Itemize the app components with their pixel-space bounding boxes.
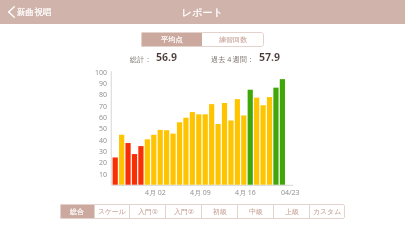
staticText: 57.9 xyxy=(259,50,281,64)
staticText: 4月 09 xyxy=(190,188,211,198)
button[interactable]: 入門① xyxy=(130,204,165,219)
button[interactable]: 練習回数 xyxy=(202,32,264,47)
staticText: 90 xyxy=(99,79,108,89)
staticText: 4月 16 xyxy=(235,188,256,198)
button[interactable]: 総合 xyxy=(60,204,94,219)
staticText: 総計： xyxy=(130,55,152,64)
staticText: 50 xyxy=(99,124,108,134)
button[interactable]: カスタム xyxy=(310,204,345,219)
button[interactable]: 上級 xyxy=(274,204,309,219)
staticText: 56.9 xyxy=(156,50,178,64)
staticText: 中級 xyxy=(249,207,263,216)
staticText: 入門② xyxy=(174,207,194,216)
staticText: 総合 xyxy=(70,207,84,216)
staticText: スケール xyxy=(98,207,127,216)
staticText: 80 xyxy=(99,90,108,100)
staticText: 100 xyxy=(95,68,108,78)
staticText: 練習回数 xyxy=(219,35,247,44)
staticText: 40 xyxy=(99,136,108,146)
staticText: 60 xyxy=(99,113,108,123)
button[interactable]: 初級 xyxy=(202,204,237,219)
staticText: 10 xyxy=(99,170,108,180)
staticText: 70 xyxy=(99,102,108,112)
staticText: 30 xyxy=(99,147,108,157)
staticText: 20 xyxy=(99,158,108,168)
button[interactable]: スケール xyxy=(95,204,129,219)
staticText: 初級 xyxy=(213,207,227,216)
staticText: 04/23 xyxy=(281,188,300,198)
staticText: 4月 02 xyxy=(145,188,166,198)
button[interactable]: 平均点 xyxy=(141,32,202,47)
button[interactable]: 中級 xyxy=(238,204,273,219)
staticText: 新曲視唱 xyxy=(17,7,52,18)
staticText: カスタム xyxy=(313,207,342,216)
staticText: 平均点 xyxy=(161,35,183,44)
staticText: レポート xyxy=(182,6,223,19)
button[interactable]: 入門② xyxy=(166,204,201,219)
staticText: 上級 xyxy=(285,207,299,216)
staticText: 入門① xyxy=(138,207,158,216)
button[interactable]: 新曲視唱 xyxy=(0,3,58,21)
staticText: 過去４週間： xyxy=(211,55,255,64)
